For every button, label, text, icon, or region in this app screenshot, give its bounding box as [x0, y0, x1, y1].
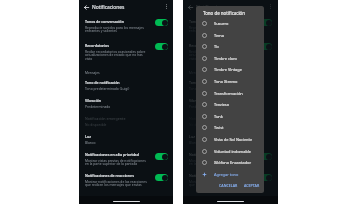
staticText: Predeterminado	[189, 104, 215, 108]
staticText: Notificaciones	[196, 4, 229, 11]
button[interactable]: Tono de notificación	[189, 80, 253, 90]
staticText: Notificaciones en alta prioridad	[189, 152, 243, 157]
staticText: Notificaciones	[92, 4, 125, 11]
button[interactable]: Vibración	[189, 98, 253, 108]
staticText: Twist	[214, 125, 224, 130]
staticText: No disponible	[189, 122, 211, 126]
button[interactable]: Vista de Sol Naciente	[196, 133, 264, 145]
button[interactable]: Notificaciones de reacciones	[189, 173, 253, 187]
staticText: Notificación emergente	[85, 116, 126, 121]
staticText: Tono predeterminado (Luigi)	[85, 86, 130, 90]
staticText: Timbre Vintage	[214, 67, 242, 72]
staticText: No disponible	[85, 122, 107, 126]
button[interactable]: Back	[81, 2, 91, 12]
staticText: Recordatorios	[85, 43, 110, 48]
staticText: Mostrar vistas previas de notificaciones…	[85, 158, 149, 166]
staticText: Tono predeterminado (Luigi)	[189, 86, 234, 90]
button[interactable]: Toggle	[259, 153, 272, 160]
button[interactable]: Toggle	[155, 153, 168, 160]
staticText: Travieso	[214, 102, 230, 107]
button[interactable]: Transformación	[196, 87, 264, 99]
staticText: Mostrar vistas previas de notificaciones…	[189, 158, 253, 166]
staticText: Susurro	[214, 21, 229, 26]
staticText: Tono de notificación	[189, 80, 224, 85]
button[interactable]: Luz	[85, 134, 149, 144]
staticText: Blanco	[189, 140, 200, 144]
button[interactable]: Tonos de conversación	[189, 19, 253, 33]
staticText: Mostrar notificaciones de las reacciones…	[189, 179, 253, 187]
button[interactable]: Toggle	[155, 43, 168, 50]
button[interactable]: Timbre claro	[196, 52, 264, 64]
staticText: Tonos de conversación	[189, 19, 228, 24]
staticText: Notificación emergente	[189, 116, 230, 121]
staticText: Recordatorios	[189, 43, 214, 48]
button[interactable]: Toggle	[259, 174, 272, 181]
button[interactable]: CANCELAR	[217, 181, 240, 190]
staticText: Blanco	[85, 140, 96, 144]
staticText: Voluntad indomable	[214, 149, 251, 154]
button[interactable]: Back	[185, 2, 195, 12]
staticText: Tunk	[214, 114, 223, 119]
button[interactable]: Vibración	[85, 98, 149, 108]
staticText: Predeterminado	[85, 104, 111, 108]
button[interactable]: Toggle	[155, 174, 168, 181]
staticText: Tono Xtremo	[214, 79, 238, 84]
button[interactable]: Notificaciones de reacciones	[85, 173, 149, 187]
staticText: Notificaciones en alta prioridad	[85, 152, 139, 157]
button[interactable]: Tono de notificación	[85, 80, 149, 90]
button[interactable]: Twist	[196, 121, 264, 133]
staticText: Agregar tono	[214, 172, 239, 177]
staticText: Transformación	[214, 91, 243, 96]
button[interactable]: Recordatorios	[189, 43, 253, 61]
staticText: Mostrar notificaciones de las reacciones…	[85, 179, 149, 187]
staticText: Timbre claro	[214, 56, 237, 61]
button[interactable]: Timbre Vintage	[196, 63, 264, 75]
button[interactable]: Susurro	[196, 17, 264, 29]
staticText: Vibración	[85, 98, 102, 103]
button[interactable]: More options	[266, 2, 275, 11]
staticText: Notificaciones de reacciones	[189, 173, 238, 178]
button[interactable]: Xilófono Encantador	[196, 156, 264, 168]
button[interactable]: Tunk	[196, 110, 264, 122]
staticText: Tonos de conversación	[85, 19, 124, 24]
staticText: Notificaciones de reacciones	[85, 173, 134, 178]
button[interactable]: Tic	[196, 40, 264, 52]
staticText: Vista de Sol Naciente	[214, 137, 253, 142]
button[interactable]: Notificaciones en alta prioridad	[85, 152, 149, 166]
button[interactable]: Toggle	[259, 19, 272, 26]
staticText: Luz	[85, 134, 91, 139]
button[interactable]: Notificación emergente	[85, 116, 149, 126]
staticText: Xilófono Encantador	[214, 160, 252, 165]
button[interactable]: Toggle	[155, 19, 168, 26]
staticText: Tono de notificación	[85, 80, 120, 85]
staticText: ACEPTAR	[244, 183, 260, 188]
staticText: Recibe recordatorios ocasionales sobre a…	[85, 49, 149, 61]
staticText: Tema	[214, 33, 224, 38]
staticText: Mensajes	[189, 70, 204, 74]
staticText: Reproducir sonidos para los mensajes ent…	[189, 25, 253, 33]
button[interactable]: ACEPTAR	[242, 181, 262, 190]
button[interactable]: Notificación emergente	[189, 116, 253, 126]
button[interactable]: Agregar tono	[196, 168, 264, 180]
button[interactable]: Notificaciones en alta prioridad	[189, 152, 253, 166]
button[interactable]: Voluntad indomable	[196, 145, 264, 157]
button[interactable]: Travieso	[196, 98, 264, 110]
button[interactable]: Luz	[189, 134, 253, 144]
staticText: Vibración	[189, 98, 206, 103]
button[interactable]: Tema	[196, 29, 264, 41]
button[interactable]: Recordatorios	[85, 43, 149, 61]
staticText: Reproducir sonidos para los mensajes ent…	[85, 25, 149, 33]
staticText: Tic	[214, 44, 220, 49]
staticText: Tono de notificación	[203, 10, 245, 16]
button[interactable]: Tono Xtremo	[196, 75, 264, 87]
staticText: Recibe recordatorios ocasionales sobre a…	[189, 49, 253, 61]
button[interactable]: More options	[162, 2, 171, 11]
button[interactable]: Toggle	[259, 43, 272, 50]
staticText: Luz	[189, 134, 195, 139]
staticText: Mensajes	[85, 70, 100, 74]
staticText: CANCELAR	[219, 183, 238, 188]
button[interactable]: Tonos de conversación	[85, 19, 149, 33]
